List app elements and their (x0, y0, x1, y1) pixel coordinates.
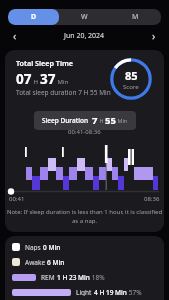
button[interactable]: REM (12, 273, 105, 281)
staticText: 07 (16, 70, 32, 88)
staticText: 00:41 (9, 195, 25, 203)
staticText: Sleep Duration (42, 116, 92, 125)
staticText: M (132, 12, 139, 22)
button[interactable]: M (110, 9, 161, 25)
button[interactable]: D (8, 9, 59, 25)
staticText: 18% (90, 273, 105, 281)
staticText: H (98, 117, 105, 124)
button[interactable]: Sleep Duration (42, 114, 128, 127)
staticText: H (32, 78, 40, 86)
staticText: D (31, 12, 37, 22)
staticText: 6 Min (47, 258, 65, 266)
staticText: 08:36 (144, 195, 160, 203)
staticText: 1 H 23 Min (57, 273, 90, 281)
staticText: Naps (25, 243, 43, 251)
button[interactable]: › (152, 29, 156, 43)
button[interactable]: ‹ (13, 29, 17, 43)
button[interactable]: Awake (12, 258, 65, 266)
staticText: 85 (125, 68, 138, 83)
staticText: Note: If sleep duration is less than 1 h… (5, 208, 164, 224)
staticText: Awake (25, 258, 47, 266)
staticText: Total Sleep Time (16, 58, 74, 68)
staticText: Total sleep duration 7 H 55 Min (16, 88, 111, 97)
staticText: Light (76, 288, 94, 296)
staticText: Jun 20, 2024 (64, 31, 105, 41)
staticText: 55 (105, 114, 116, 127)
staticText: 57% (127, 288, 142, 296)
staticText: Min (56, 78, 69, 86)
staticText: 37 (40, 70, 56, 88)
staticText: Min (116, 117, 128, 124)
staticText: 4 H 19 Min (94, 288, 127, 296)
staticText: 00:41-08:36 (68, 128, 101, 136)
staticText: W (81, 12, 88, 22)
staticText: REM (41, 273, 57, 281)
staticText: Score (123, 83, 139, 91)
staticText: 7 (92, 114, 98, 127)
button[interactable]: Light (12, 288, 142, 296)
staticText: 0 Min (43, 243, 61, 251)
button[interactable]: W (59, 9, 110, 25)
button[interactable]: Naps (12, 243, 61, 251)
